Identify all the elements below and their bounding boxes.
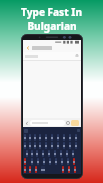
button[interactable]: key	[37, 158, 39, 165]
button[interactable]: key	[57, 134, 59, 141]
button[interactable]: key	[60, 150, 62, 157]
button[interactable]: Language	[35, 166, 37, 173]
button[interactable]: key	[48, 150, 50, 157]
button[interactable]: key	[69, 142, 71, 149]
button[interactable]: key	[49, 158, 51, 165]
button[interactable]: Back	[25, 45, 31, 51]
button[interactable]: key	[63, 142, 65, 149]
button[interactable]	[30, 120, 65, 126]
button[interactable]: key	[55, 158, 57, 165]
button[interactable]: Symbols	[24, 166, 26, 173]
button[interactable]: key	[67, 158, 69, 165]
button[interactable]: key	[31, 158, 33, 165]
button[interactable]: Emoji	[29, 166, 31, 173]
button[interactable]: Space	[41, 166, 45, 173]
button[interactable]: key	[54, 150, 56, 157]
button[interactable]: key	[39, 134, 41, 141]
button[interactable]: Add contact	[75, 54, 79, 58]
button[interactable]: key	[66, 150, 68, 157]
button[interactable]: key	[42, 150, 44, 157]
button[interactable]: key	[57, 142, 59, 149]
button[interactable]: key	[63, 134, 65, 141]
button[interactable]: key	[36, 150, 38, 157]
button[interactable]: key	[61, 158, 63, 165]
button[interactable]: key	[26, 150, 28, 157]
button[interactable]: key	[39, 142, 41, 149]
button[interactable]: key	[29, 142, 31, 149]
button[interactable]: key	[43, 158, 45, 165]
button[interactable]: Backspace	[73, 158, 75, 165]
staticText: Bulgarian	[27, 19, 77, 33]
button[interactable]: key	[45, 134, 47, 141]
button[interactable]: Period	[62, 166, 64, 173]
button[interactable]: key	[24, 134, 26, 141]
button[interactable]: key	[45, 142, 47, 149]
button[interactable]: key	[51, 134, 53, 141]
button[interactable]: key	[24, 142, 26, 149]
button[interactable]: Emoji	[66, 121, 70, 125]
button[interactable]: Send	[71, 120, 79, 126]
button[interactable]: key	[29, 134, 31, 141]
button[interactable]: key	[34, 142, 36, 149]
button[interactable]: key	[72, 150, 74, 157]
button[interactable]: Comma	[68, 166, 70, 173]
button[interactable]: Shift	[24, 158, 26, 165]
button[interactable]: Attach	[25, 121, 29, 125]
button[interactable]: key	[34, 134, 36, 141]
button[interactable]: key	[51, 142, 53, 149]
button[interactable]: Enter	[74, 166, 76, 173]
staticText: Type Fast In	[21, 5, 82, 19]
button[interactable]: key	[75, 134, 77, 141]
button[interactable]: key	[69, 134, 71, 141]
button[interactable]: key	[75, 142, 77, 149]
button[interactable]: key	[31, 150, 33, 157]
